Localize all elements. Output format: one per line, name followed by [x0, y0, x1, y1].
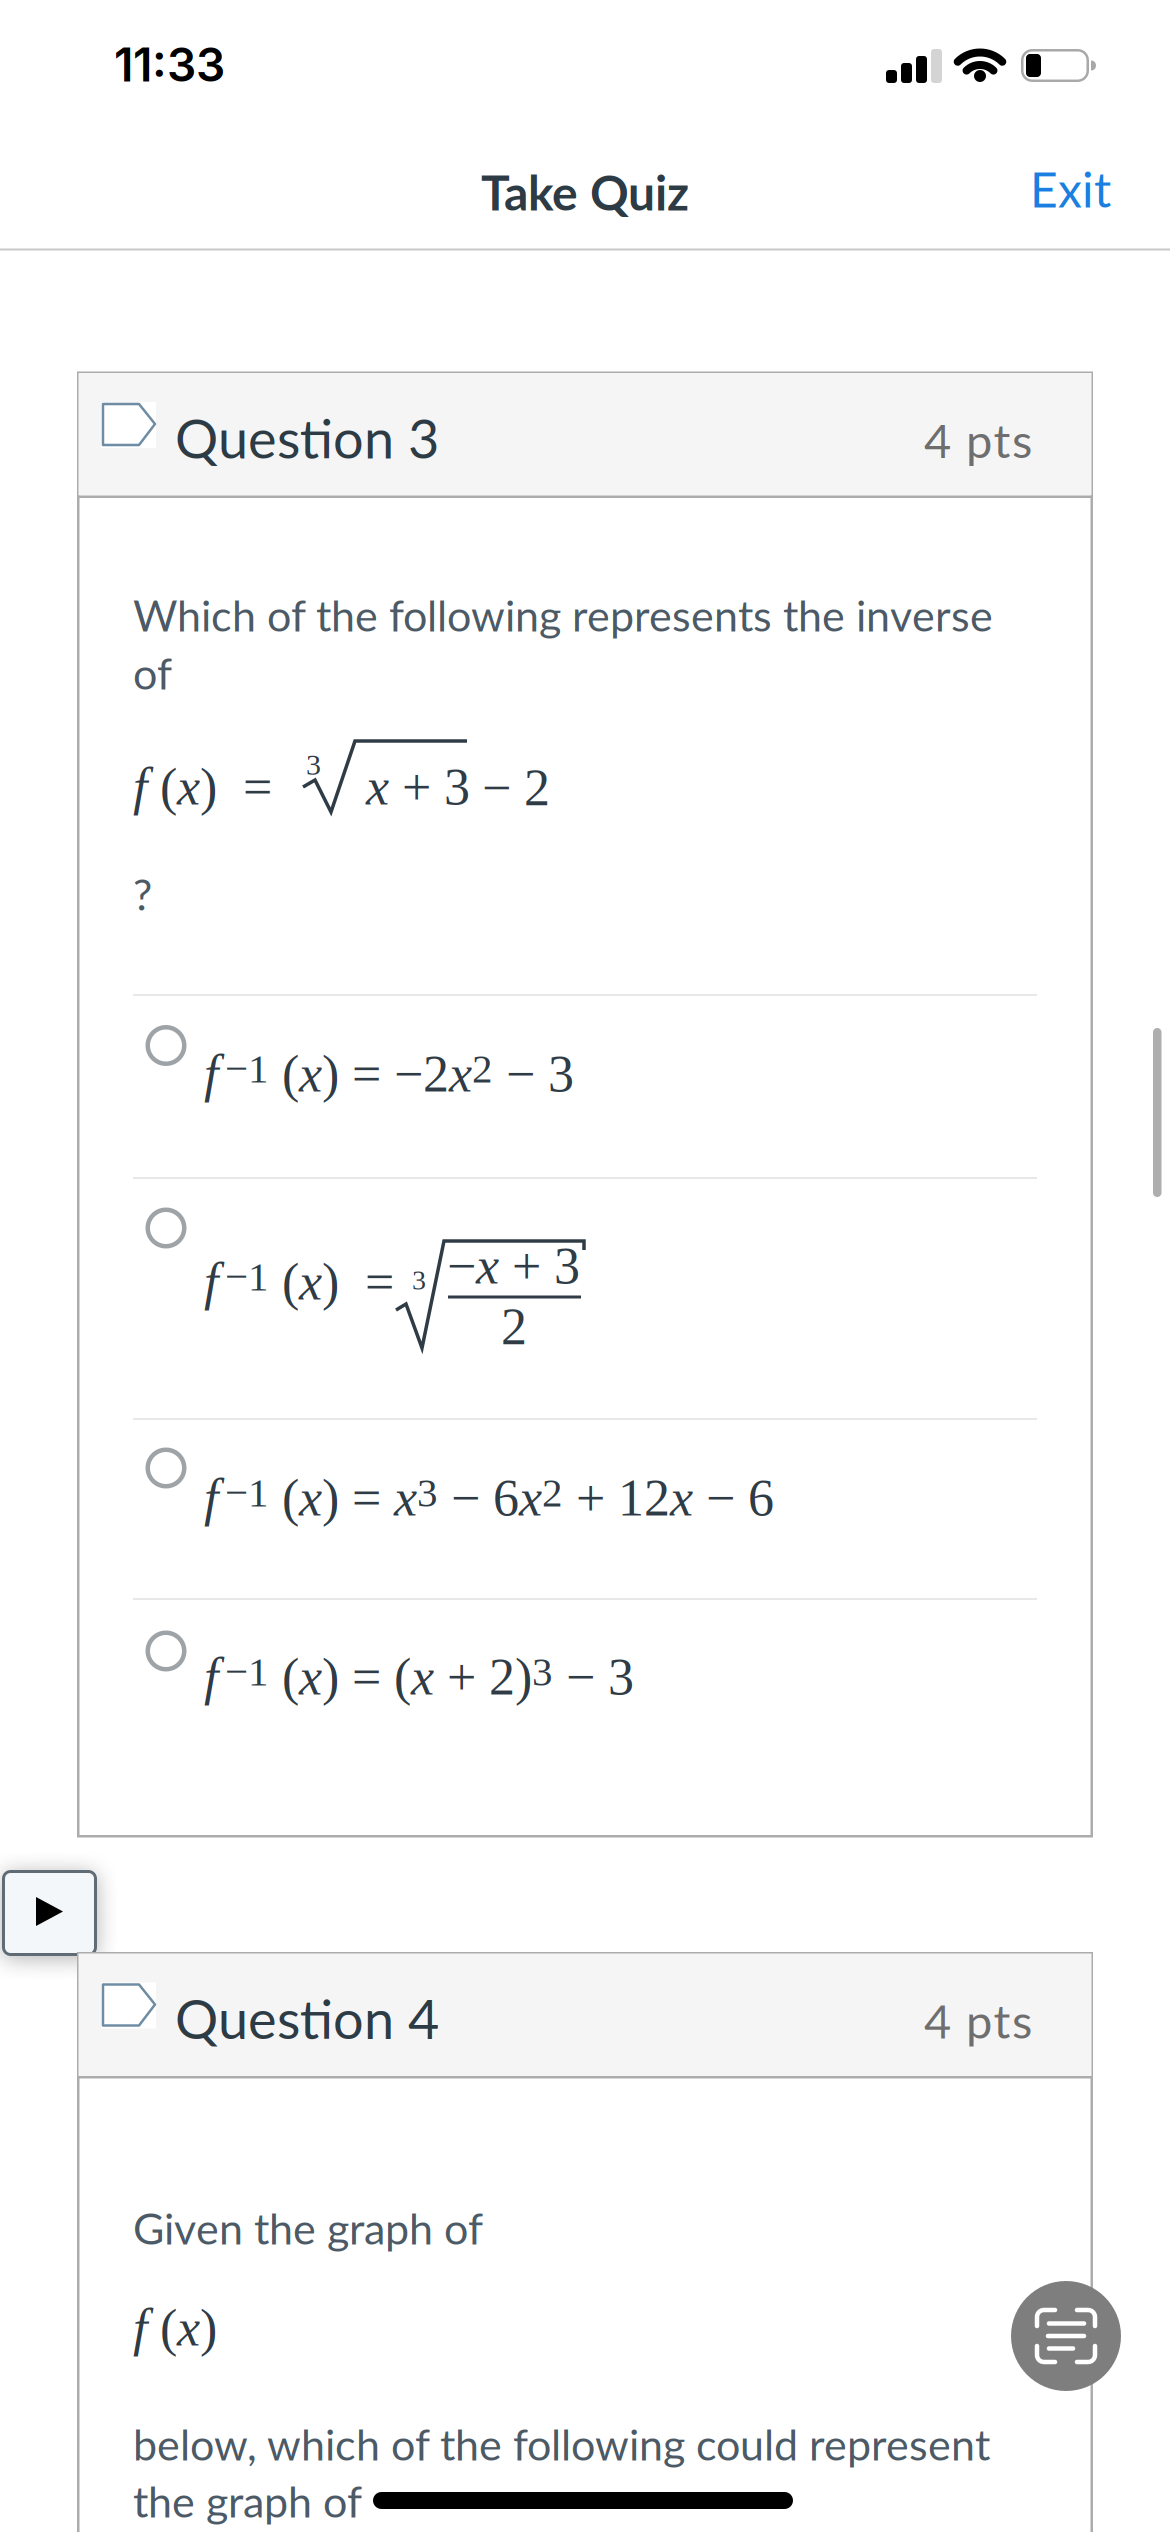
staticText: 3 — [412, 1265, 426, 1296]
staticText: Question 4 — [175, 1986, 439, 2051]
staticText: f −1 (x) = x3 − 6x2 + 12x − 6 — [204, 1470, 774, 1526]
staticText: the graph of — [133, 2475, 362, 2527]
button[interactable]: Exit — [911, 160, 1111, 218]
staticText: of — [133, 647, 172, 699]
staticText: − 2 — [482, 759, 550, 817]
staticText: Which of the following represents the in… — [133, 589, 993, 641]
staticText: 3 — [306, 748, 321, 781]
staticText: 11:33 — [114, 37, 225, 93]
staticText: below, which of the following could repr… — [133, 2418, 990, 2470]
staticText: x + 3 — [366, 759, 470, 815]
staticText: 2 — [501, 1298, 527, 1355]
staticText: f (x) — [133, 2300, 217, 2356]
button[interactable]: Scan text — [1011, 2281, 1121, 2391]
staticText: Given the graph of — [133, 2202, 483, 2254]
staticText: 4 pts — [924, 411, 1032, 468]
button[interactable]: Play — [2, 1870, 97, 1956]
staticText: f −1 (x) = −2x2 − 3 — [204, 1046, 574, 1102]
button[interactable]: f inverse of x equals negative 2 x squar… — [133, 996, 1037, 1177]
staticText: Question 3 — [175, 405, 439, 470]
staticText: f −1 (x) = (x + 2)3 − 3 — [204, 1649, 634, 1705]
staticText: Exit — [1030, 160, 1111, 218]
staticText: 4 pts — [924, 1992, 1032, 2048]
staticText: f (x) = — [133, 759, 285, 815]
button[interactable]: f inverse of x equals x cubed minus 6 x … — [133, 1420, 1037, 1598]
staticText: f −1 (x) = — [204, 1254, 394, 1310]
button[interactable]: f inverse of x equals open paren x plus … — [133, 1600, 1037, 1836]
staticText: −x + 3 — [447, 1238, 580, 1294]
staticText: ? — [133, 868, 152, 920]
button[interactable]: f inverse of x equals cube root of negat… — [133, 1179, 1037, 1418]
staticText: Take Quiz — [481, 163, 689, 221]
